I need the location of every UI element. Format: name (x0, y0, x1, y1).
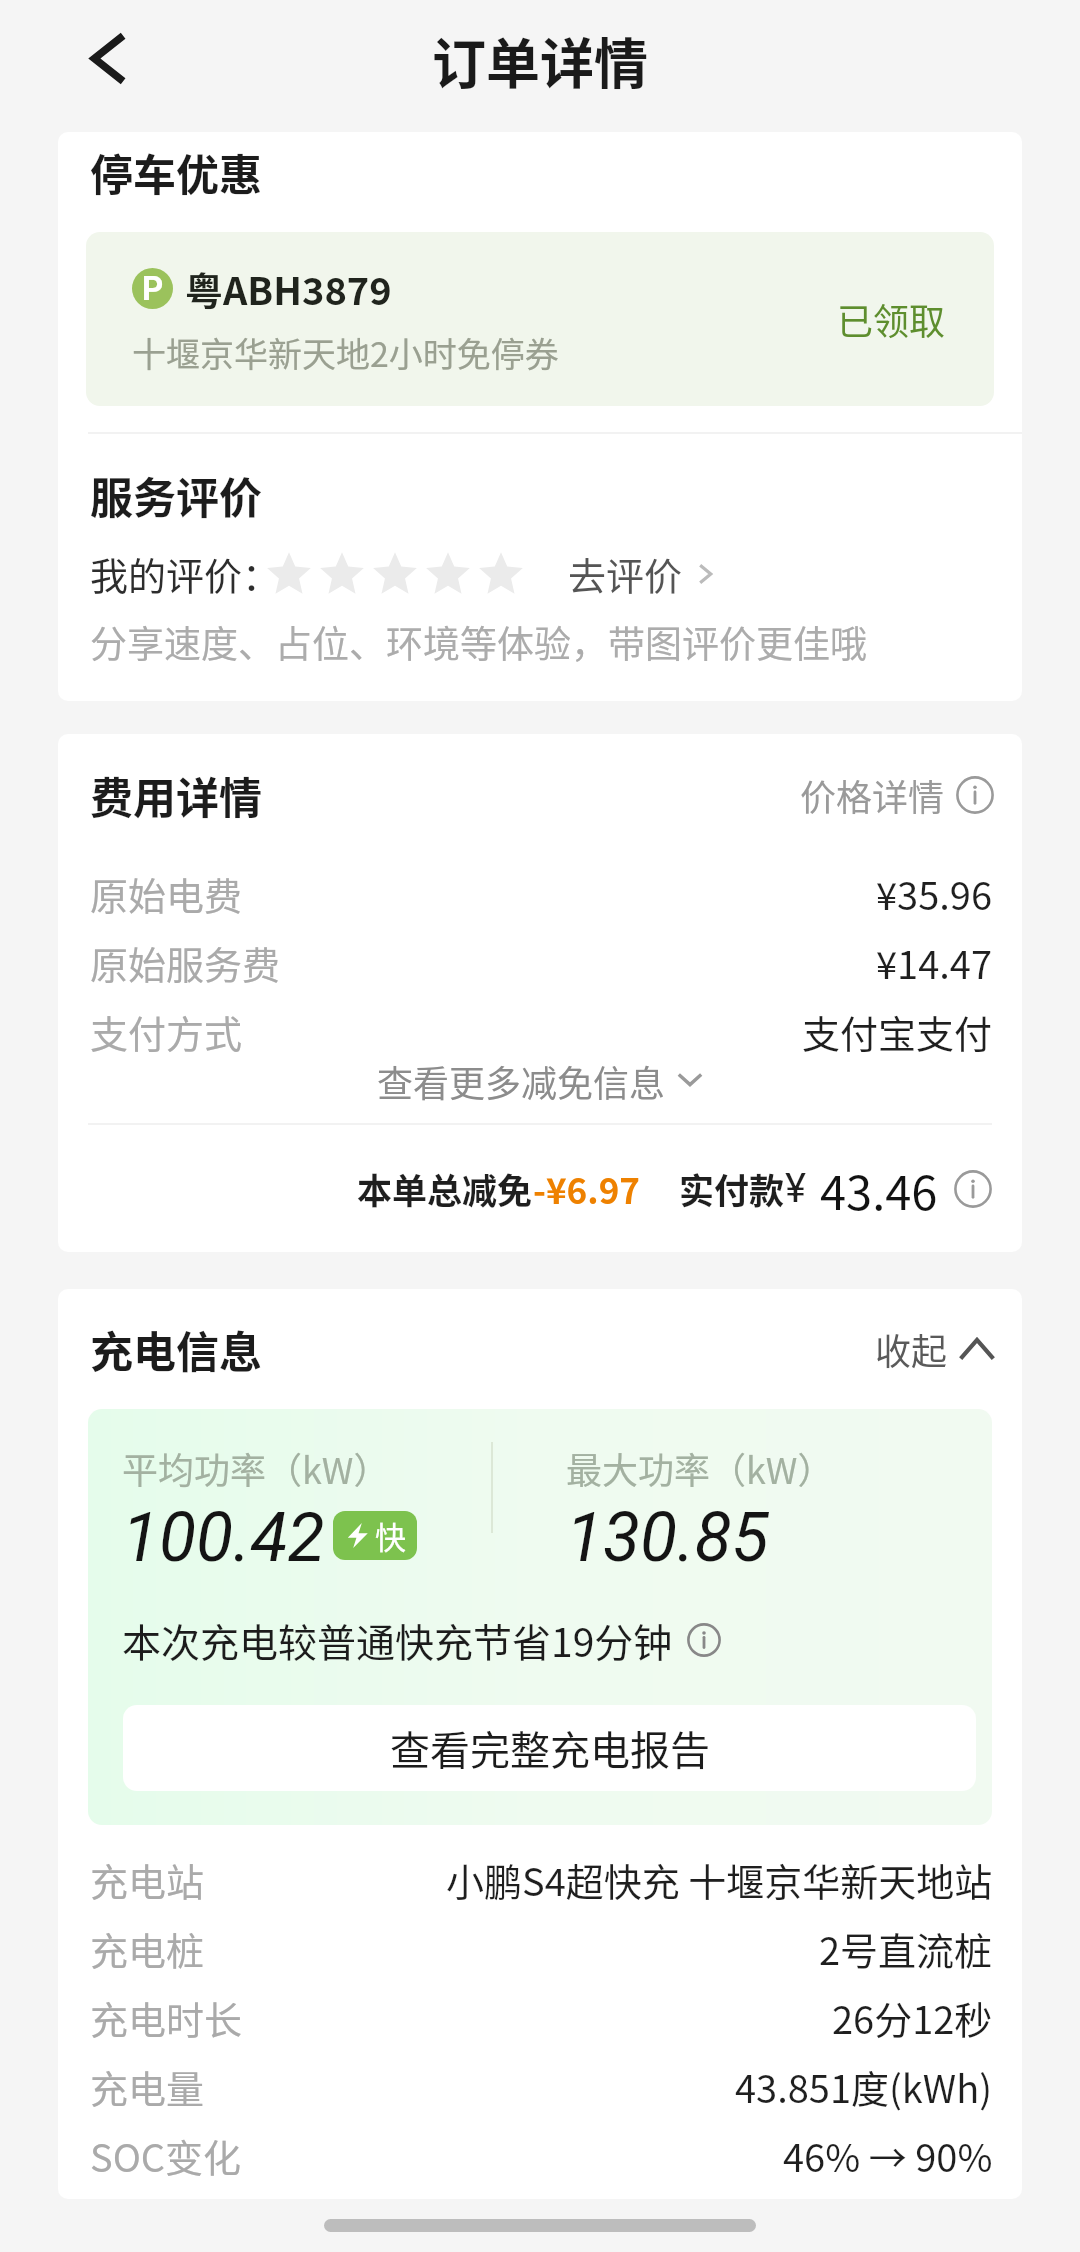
staticText: 26分12秒 (832, 1990, 993, 2045)
staticText: 粤ABH3879 (185, 261, 392, 316)
staticText: 已领取 (837, 293, 946, 345)
staticText: 价格详情 (800, 769, 945, 821)
staticText: 分享速度、占位、环境等体验，带图评价更佳哦 (90, 615, 867, 669)
staticText: P (142, 269, 164, 308)
staticText: 充电站 (90, 1852, 205, 1907)
staticText: 快 (375, 1513, 406, 1558)
button[interactable]: 价格详情 (800, 769, 994, 821)
staticText: 停车优惠 (90, 141, 262, 203)
staticText: 2号直流桩 (819, 1921, 993, 1976)
staticText: 费用详情 (90, 764, 262, 826)
staticText: 43.46 (820, 1155, 938, 1223)
staticText: 原始服务费 (90, 935, 281, 990)
button[interactable]: 收起 (875, 1323, 994, 1375)
button[interactable]: 查看更多减免信息 (58, 1055, 1022, 1103)
button[interactable]: Back (66, 16, 150, 100)
staticText: 订单详情 (432, 21, 648, 99)
staticText: 收起 (875, 1323, 948, 1375)
staticText: 支付方式 (90, 1004, 243, 1059)
staticText: 本单总减免 (357, 1163, 533, 1214)
staticText: 46% → 90% (783, 2128, 993, 2183)
staticText: 130.85 (566, 1498, 769, 1572)
staticText: 充电时长 (90, 1990, 243, 2045)
staticText: 支付宝支付 (802, 1004, 993, 1059)
staticText: 平均功率（kW） (122, 1442, 390, 1494)
staticText: 最大功率（kW） (566, 1442, 834, 1494)
staticText: -¥6.97 (533, 1163, 640, 1214)
staticText: 查看更多减免信息 (377, 1055, 666, 1103)
staticText: 十堰京华新天地2小时免停券 (132, 328, 559, 377)
button[interactable]: 查看完整充电报告 (123, 1705, 976, 1791)
staticText: 原始电费 (90, 866, 243, 921)
staticText: 实付款 (679, 1163, 785, 1214)
staticText: 我的评价： (90, 546, 281, 601)
staticText: 服务评价 (90, 464, 262, 526)
staticText: 去评价 (568, 546, 683, 601)
staticText: 100.42 (122, 1498, 325, 1572)
staticText: 小鹏S4超快充 十堰京华新天地站 (446, 1852, 993, 1907)
button[interactable]: 去评价 (568, 546, 717, 601)
staticText: 充电量 (90, 2059, 205, 2114)
staticText: SOC变化 (90, 2128, 242, 2183)
staticText: 充电桩 (90, 1921, 205, 1976)
staticText: 43.851度(kWh) (735, 2059, 993, 2114)
staticText: ¥35.96 (876, 866, 993, 921)
staticText: 充电信息 (90, 1318, 262, 1380)
button[interactable]: P (86, 232, 994, 406)
staticText: ¥14.47 (876, 935, 993, 990)
staticText: ¥ (785, 1165, 807, 1212)
staticText: 查看完整充电报告 (390, 1719, 710, 1777)
staticText: 本次充电较普通快充节省19分钟 (122, 1612, 673, 1668)
